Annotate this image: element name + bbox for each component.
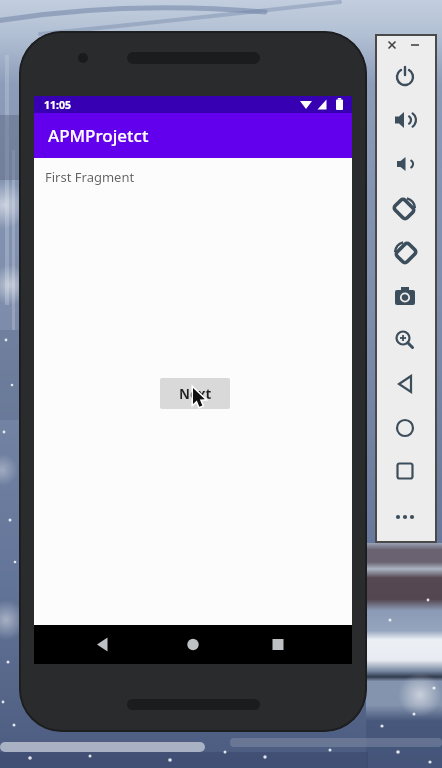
button[interactable] [83,625,123,664]
button[interactable] [387,499,423,535]
button[interactable] [387,410,423,446]
button[interactable] [387,146,423,182]
staticText: First Fragment [45,168,135,186]
staticText: APMProjetct [48,124,149,147]
staticText: Next [179,385,212,403]
button[interactable] [387,453,423,489]
button[interactable] [387,278,423,314]
button[interactable] [387,190,423,226]
button[interactable] [173,625,213,664]
button[interactable]: Next [160,378,230,409]
button[interactable] [387,322,423,358]
button[interactable] [387,58,423,94]
button[interactable] [387,102,423,138]
button[interactable] [384,37,400,53]
button[interactable] [387,234,423,270]
button[interactable] [258,625,298,664]
staticText: 11:05 [44,98,71,112]
button[interactable] [387,366,423,402]
button[interactable] [407,37,423,53]
